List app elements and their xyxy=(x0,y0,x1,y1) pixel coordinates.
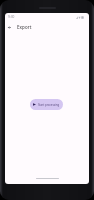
staticText: Export xyxy=(17,24,32,30)
button[interactable]: Back xyxy=(5,23,14,32)
button[interactable]: Start processing xyxy=(30,99,63,110)
staticText: Start processing xyxy=(38,103,60,107)
staticText: 9:30 xyxy=(8,15,15,19)
